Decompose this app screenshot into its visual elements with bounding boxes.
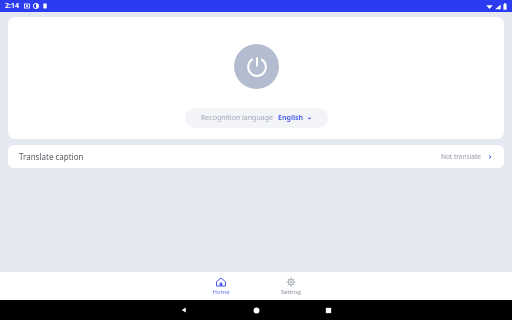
button[interactable]: Recognition language <box>185 108 328 128</box>
button[interactable]: Home <box>220 300 292 320</box>
button[interactable]: Setting <box>256 272 326 300</box>
button[interactable]: Home <box>186 272 256 300</box>
staticText: Not translate <box>441 152 481 161</box>
button[interactable]: Start recognition <box>234 44 279 89</box>
button[interactable]: Back <box>148 300 220 320</box>
staticText: Setting <box>281 288 301 296</box>
staticText: 2:14 <box>5 1 19 11</box>
button[interactable]: Translate caption <box>8 145 504 168</box>
staticText: Home <box>212 288 230 296</box>
staticText: English <box>278 113 304 123</box>
staticText: Recognition language <box>201 113 273 123</box>
button[interactable]: Recent apps <box>292 300 364 320</box>
staticText: Translate caption <box>19 151 84 162</box>
